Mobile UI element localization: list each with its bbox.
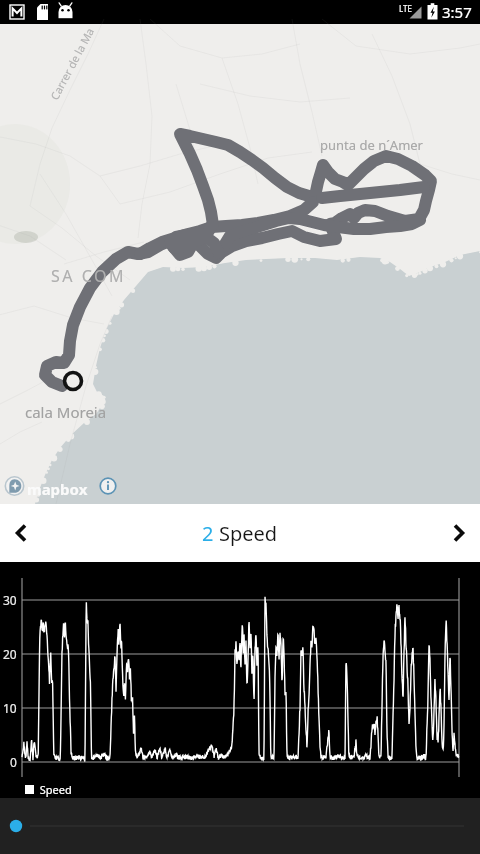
staticText: punta de n´Amer: [320, 136, 423, 154]
button[interactable]: Next graph: [422, 504, 480, 562]
button[interactable]: Playback position: [0, 798, 480, 854]
staticText: LTE: [399, 3, 412, 14]
button[interactable]: Previous graph: [0, 504, 58, 562]
staticText: 10: [3, 700, 17, 716]
staticText: 0: [10, 754, 17, 770]
staticText: mapbox: [27, 479, 88, 499]
staticText: cala Moreia: [25, 402, 107, 422]
staticText: Carrer de la Ma: [47, 25, 97, 102]
staticText: Speed: [219, 520, 278, 547]
staticText: 30: [3, 592, 17, 608]
staticText: 3:57: [442, 2, 472, 22]
staticText: 20: [3, 646, 17, 662]
staticText: 2: [202, 520, 219, 547]
staticText: Speed: [34, 782, 72, 797]
staticText: SA COM: [51, 265, 126, 287]
